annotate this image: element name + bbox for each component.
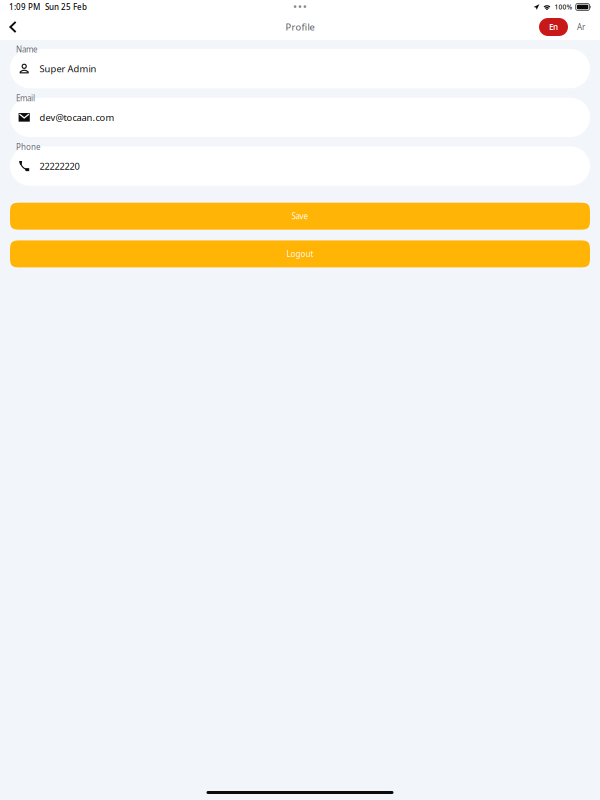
staticText: En: [549, 22, 558, 32]
staticText: Phone: [16, 142, 41, 152]
staticText: dev@tocaan.com: [39, 111, 114, 124]
button[interactable]: Super Admin: [10, 49, 590, 88]
staticText: 22222220: [39, 160, 79, 172]
staticText: Email: [16, 93, 35, 103]
staticText: Sun 25 Feb: [45, 2, 87, 12]
button[interactable]: Back: [2, 15, 24, 39]
staticText: Logout: [286, 249, 313, 259]
staticText: Save: [291, 211, 308, 221]
staticText: 100%: [554, 3, 572, 11]
button[interactable]: Save: [10, 203, 590, 230]
button[interactable]: dev@tocaan.com: [10, 98, 590, 137]
staticText: 1:09 PM: [9, 2, 40, 12]
button[interactable]: En: [539, 18, 568, 36]
staticText: Name: [16, 44, 38, 55]
button[interactable]: 22222220: [10, 146, 590, 186]
staticText: Ar: [577, 22, 585, 32]
staticText: Super Admin: [39, 62, 96, 75]
staticText: Profile: [285, 21, 314, 33]
button[interactable]: Ar: [568, 18, 594, 36]
button[interactable]: Logout: [10, 240, 590, 267]
